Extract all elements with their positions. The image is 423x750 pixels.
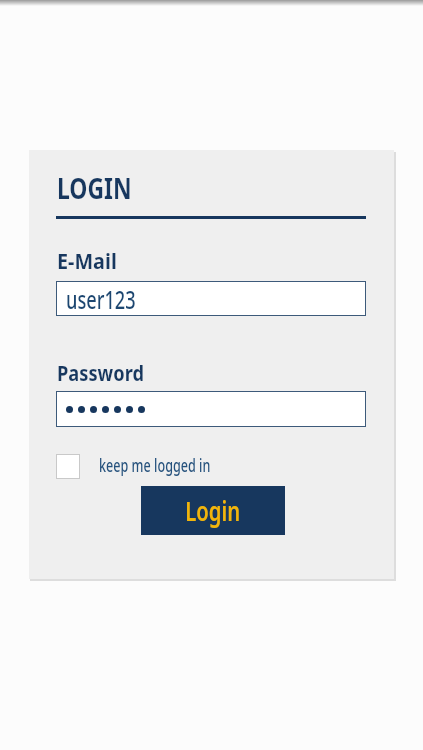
button[interactable]: Login bbox=[141, 486, 285, 535]
staticText: E-Mail bbox=[57, 245, 117, 275]
button[interactable]: user123 bbox=[56, 281, 366, 316]
staticText: user123 bbox=[66, 281, 136, 316]
button[interactable] bbox=[56, 454, 80, 479]
staticText: Password bbox=[57, 357, 144, 387]
button[interactable] bbox=[56, 391, 366, 427]
staticText: keep me logged in bbox=[99, 453, 211, 478]
staticText: LOGIN bbox=[57, 168, 132, 207]
staticText: Login bbox=[185, 492, 241, 529]
